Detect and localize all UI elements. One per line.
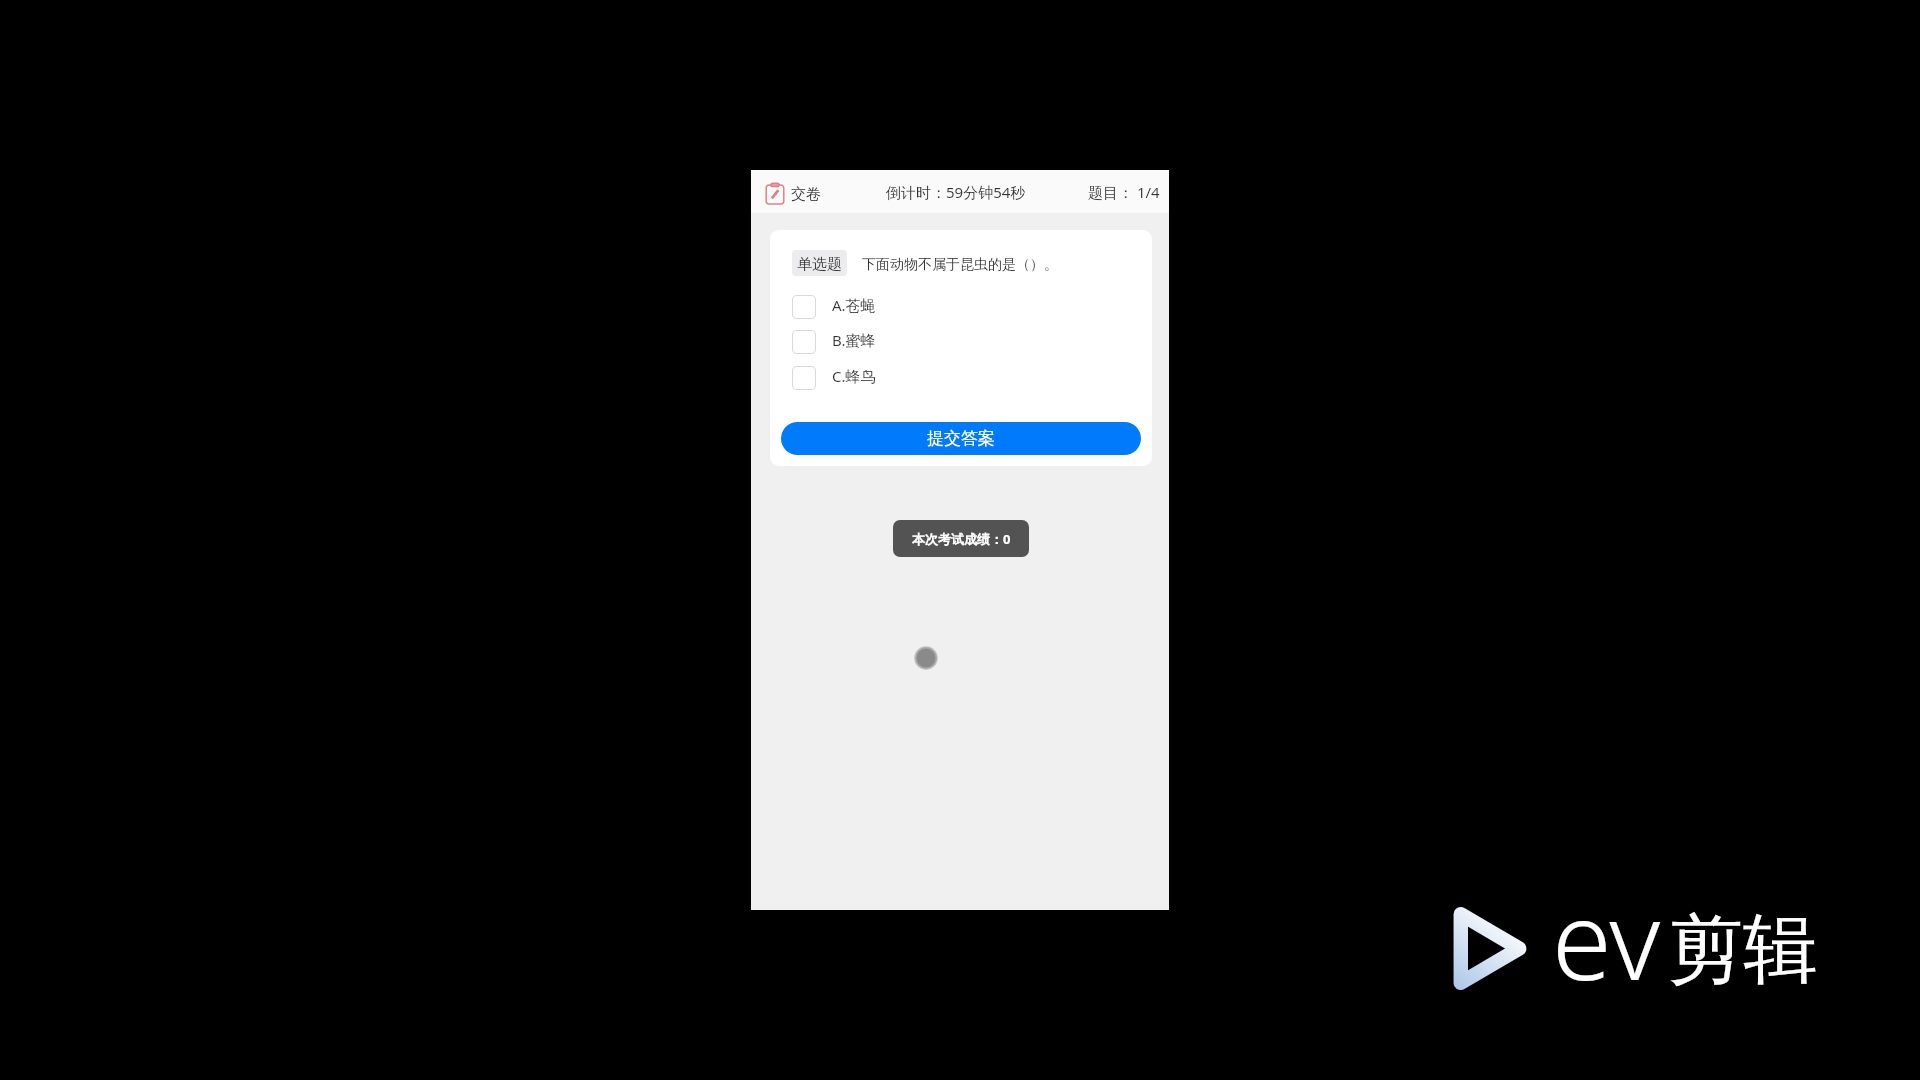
- staticText: 倒计时：59分钟54秒: [886, 182, 1026, 202]
- other: 交卷: [764, 182, 786, 206]
- staticText: 题目： 1/4: [1088, 182, 1160, 202]
- staticText: A.苍蝇: [832, 295, 876, 315]
- staticText: 下面动物不属于昆虫的是（）。: [862, 256, 1058, 274]
- staticText: 提交答案: [927, 428, 995, 449]
- button[interactable]: 交卷: [764, 170, 822, 213]
- staticText: 剪辑: [1668, 903, 1818, 997]
- button[interactable]: B.蜜蜂: [770, 330, 1152, 354]
- staticText: C.蜂鸟: [832, 366, 876, 386]
- button[interactable]: 提交答案: [781, 422, 1141, 455]
- staticText: 本次考试成绩：0: [912, 530, 1011, 548]
- staticText: ev: [1552, 865, 1661, 1012]
- staticText: 交卷: [791, 185, 821, 204]
- staticText: B.蜜蜂: [832, 330, 876, 350]
- button[interactable]: C.蜂鸟: [770, 366, 1152, 390]
- button[interactable]: A.苍蝇: [770, 295, 1152, 319]
- staticText: 单选题: [797, 255, 842, 274]
